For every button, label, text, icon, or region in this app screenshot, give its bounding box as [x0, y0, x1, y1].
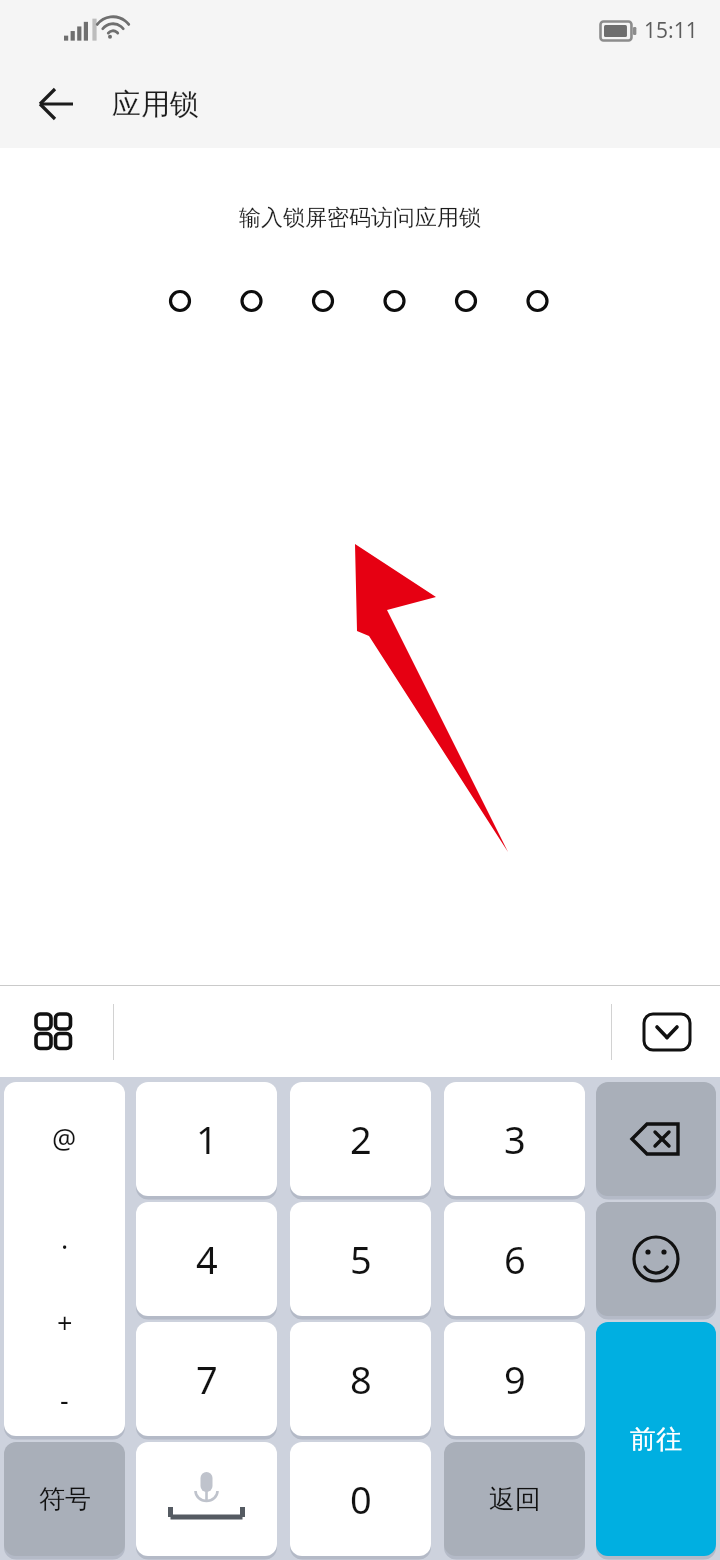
- staticText: 2: [350, 1113, 372, 1165]
- staticText: 15:11: [644, 16, 698, 45]
- button[interactable]: 1: [136, 1082, 277, 1196]
- staticText: 9: [504, 1353, 526, 1405]
- staticText: .: [61, 1220, 69, 1257]
- staticText: 6: [504, 1233, 526, 1285]
- button[interactable]: 7: [136, 1322, 277, 1436]
- button[interactable]: 3: [444, 1082, 585, 1196]
- button[interactable]: 8: [290, 1322, 431, 1436]
- button[interactable]: 符号: [4, 1442, 125, 1556]
- staticText: @: [52, 1120, 77, 1157]
- button[interactable]: +: [4, 1282, 125, 1362]
- button[interactable]: Keyboard layout: [22, 1000, 86, 1064]
- staticText: 8: [350, 1353, 372, 1405]
- staticText: 5: [350, 1233, 372, 1285]
- staticText: 7: [196, 1353, 218, 1405]
- button[interactable]: Back: [20, 68, 92, 140]
- staticText: 前往: [630, 1423, 682, 1456]
- staticText: 4: [196, 1233, 218, 1285]
- staticText: 1: [196, 1113, 218, 1165]
- button[interactable]: Voice input and space: [136, 1442, 277, 1556]
- staticText: 输入锁屏密码访问应用锁: [0, 204, 720, 232]
- staticText: 符号: [39, 1483, 91, 1516]
- staticText: -: [60, 1381, 69, 1418]
- staticText: 0: [350, 1473, 372, 1525]
- button[interactable]: .: [4, 1194, 125, 1282]
- button[interactable]: 返回: [444, 1442, 585, 1556]
- button[interactable]: 2: [290, 1082, 431, 1196]
- button[interactable]: 5: [290, 1202, 431, 1316]
- button[interactable]: 0: [290, 1442, 431, 1556]
- button[interactable]: 6: [444, 1202, 585, 1316]
- staticText: 返回: [489, 1483, 541, 1516]
- staticText: 应用锁: [112, 86, 199, 123]
- button[interactable]: 9: [444, 1322, 585, 1436]
- staticText: 3: [504, 1113, 526, 1165]
- staticText: +: [57, 1304, 73, 1341]
- button[interactable]: 前往: [596, 1322, 716, 1556]
- button[interactable]: -: [4, 1362, 125, 1436]
- button[interactable]: 4: [136, 1202, 277, 1316]
- button[interactable]: @: [4, 1082, 125, 1194]
- button[interactable]: Hide keyboard: [632, 997, 702, 1067]
